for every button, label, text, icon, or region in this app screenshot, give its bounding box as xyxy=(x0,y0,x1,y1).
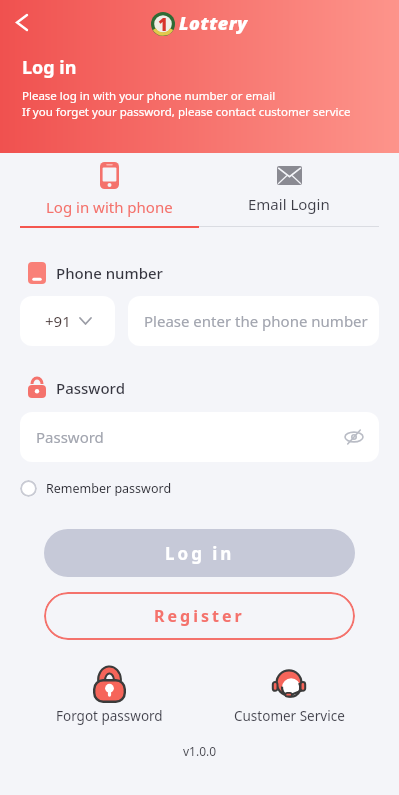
button[interactable]: Password xyxy=(20,412,379,462)
button[interactable]: Log in xyxy=(44,529,355,577)
staticText: 1 xyxy=(158,13,168,36)
staticText: Password xyxy=(56,378,125,398)
staticText: Email Login xyxy=(248,194,330,214)
staticText: Please enter the phone number xyxy=(144,311,368,331)
staticText: Register xyxy=(154,605,245,627)
button[interactable]: Remember password xyxy=(20,480,172,497)
staticText: Log in with phone xyxy=(46,197,173,217)
button[interactable]: Register xyxy=(44,592,355,640)
button[interactable]: Please enter the phone number xyxy=(128,296,379,346)
button[interactable]: +91 xyxy=(20,296,115,346)
staticText: Remember password xyxy=(46,480,172,497)
button[interactable]: Email Login xyxy=(199,153,379,226)
staticText: v1.0.0 xyxy=(183,743,217,759)
staticText: Customer Service xyxy=(234,707,345,725)
staticText: Lottery xyxy=(179,11,248,36)
staticText: Please log in with your phone number or … xyxy=(22,88,276,104)
staticText: +91 xyxy=(45,311,71,331)
staticText: Phone number xyxy=(56,263,163,283)
staticText: Log in xyxy=(165,542,235,565)
button[interactable]: Customer Service xyxy=(199,667,379,725)
button[interactable]: Forgot password xyxy=(20,667,199,725)
staticText: Forgot password xyxy=(56,707,163,725)
staticText: Log in xyxy=(22,55,77,80)
button[interactable]: Log in with phone xyxy=(20,153,199,226)
button[interactable] xyxy=(8,8,36,36)
staticText: Password xyxy=(36,427,345,447)
staticText: If you forget your password, please cont… xyxy=(22,104,351,120)
